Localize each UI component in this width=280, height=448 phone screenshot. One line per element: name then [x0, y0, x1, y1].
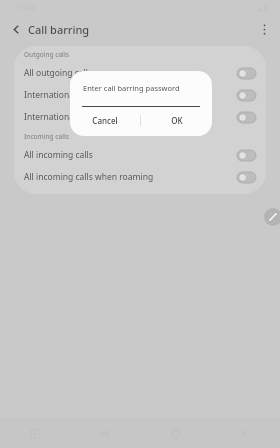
button[interactable]: Toggle	[237, 112, 256, 123]
button[interactable]: Toggle	[237, 68, 256, 79]
button[interactable]: Toggle	[237, 90, 256, 101]
staticText: Enter call barring password	[83, 83, 180, 93]
staticText: All incoming calls when roaming	[24, 171, 231, 183]
staticText: International calls except to home	[24, 111, 231, 123]
staticText: Outgoing calls	[24, 50, 69, 59]
button[interactable]: Toggle	[237, 150, 256, 161]
staticText: OK	[171, 115, 183, 126]
button[interactable]: Cancel	[70, 108, 140, 133]
button[interactable]: Toggle	[237, 172, 256, 183]
button[interactable]: All incoming calls	[14, 144, 266, 166]
staticText: All outgoing calls	[24, 67, 231, 79]
staticText: Call barring	[28, 22, 90, 37]
button[interactable]: All outgoing calls	[14, 62, 266, 84]
button[interactable]: More options	[254, 19, 274, 39]
staticText: Cancel	[92, 115, 118, 126]
staticText: International calls	[24, 89, 231, 101]
button[interactable]: International calls	[14, 84, 266, 106]
staticText: All incoming calls	[24, 149, 231, 161]
button[interactable]: International calls except to home	[14, 106, 266, 128]
button[interactable]: Navigate up	[6, 19, 26, 39]
staticText: Incoming calls	[24, 132, 69, 141]
button[interactable]: All incoming calls when roaming	[14, 166, 266, 188]
button[interactable]: OK	[141, 108, 212, 133]
button[interactable]: Edit	[264, 208, 280, 226]
